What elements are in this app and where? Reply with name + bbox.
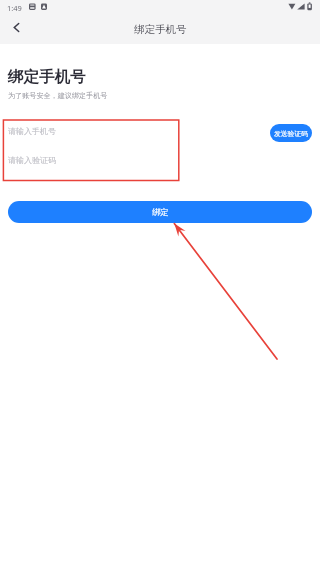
staticText: 为了账号安全，建议绑定手机号 xyxy=(8,91,108,100)
staticText: 绑定 xyxy=(152,207,169,218)
staticText: 绑定手机号 xyxy=(134,23,187,36)
staticText: 发送验证码 xyxy=(274,129,308,138)
staticText: 1:49 xyxy=(7,3,22,13)
staticText: 绑定手机号 xyxy=(8,67,86,87)
button[interactable]: 发送验证码 xyxy=(270,124,312,142)
staticText: 请输入手机号 xyxy=(8,126,56,136)
staticText: 请输入验证码 xyxy=(8,155,56,165)
button[interactable]: 绑定 xyxy=(8,201,312,223)
button[interactable]: Back xyxy=(0,16,33,43)
